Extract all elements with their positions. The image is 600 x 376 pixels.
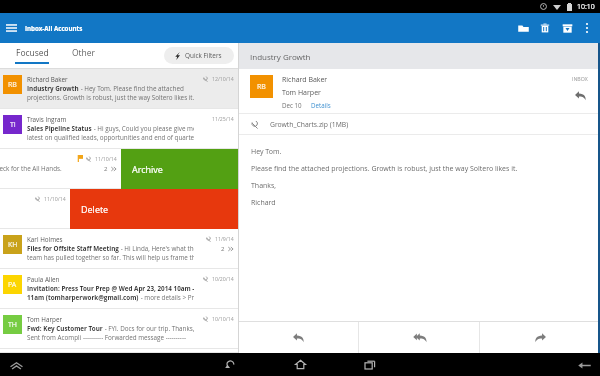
staticText: 11/9/14 (215, 235, 234, 242)
staticText: KH (8, 240, 18, 250)
button[interactable]: Other (72, 47, 96, 64)
staticText: 2 (104, 165, 108, 173)
staticText: RB (257, 82, 266, 92)
button[interactable]: LH (0, 149, 238, 189)
button[interactable]: Growth_Charts.zip (1MB) (239, 114, 600, 134)
staticText: Delete (81, 203, 109, 215)
button[interactable]: Navigation drawer (0, 13, 22, 43)
staticText: 10/10/14 (212, 315, 234, 322)
button[interactable]: Delete (534, 13, 556, 43)
staticText: 2 (221, 245, 225, 253)
button[interactable]: PA (0, 269, 238, 309)
button[interactable]: RB (0, 69, 238, 109)
button[interactable]: Collapse (6, 355, 26, 375)
button[interactable]: TI (0, 109, 238, 149)
staticText: Growth_Charts.zip (1MB) (270, 120, 349, 129)
staticText: Richard Baker (282, 75, 328, 85)
staticText: Industry Growth (27, 84, 79, 93)
staticText: Invitation: Press Tour Prep @ Wed Apr 23… (27, 284, 194, 293)
button[interactable]: More options (578, 13, 595, 43)
button[interactable]: Recent apps (350, 353, 390, 376)
button[interactable]: Delete (70, 189, 238, 229)
button[interactable]: Details (311, 101, 331, 109)
button[interactable]: Forward (480, 322, 600, 353)
button[interactable]: Archive (121, 149, 238, 189)
button[interactable]: TH (0, 309, 238, 349)
staticText: Hey Tom. (251, 147, 282, 157)
button[interactable]: Archive (556, 13, 578, 43)
staticText: INBOX (572, 75, 588, 82)
staticText: Sent from Acompli ---------- Forwarded m… (27, 333, 186, 342)
staticText: projections. Growth is robust, just the … (27, 93, 194, 102)
staticText: Quick Filters (185, 51, 222, 60)
staticText: Travis Ingram (27, 115, 67, 124)
staticText: Fwd: Key Customer Tour (27, 324, 103, 333)
staticText: Inbox-All Accounts (25, 24, 83, 32)
button[interactable]: KT (0, 349, 238, 353)
staticText: Tom Harper (282, 88, 321, 98)
staticText: - FYI. Docs for our trip. Thanks, Tom (103, 324, 194, 333)
staticText: Dec 10 (282, 101, 302, 109)
staticText: Karl Holmes (27, 235, 63, 244)
button[interactable]: JC (0, 189, 238, 229)
staticText: Richard Baker (27, 75, 68, 84)
staticText: 12/10/14 (212, 75, 234, 82)
staticText: Paula Allen (27, 275, 60, 284)
button[interactable]: Reply all (359, 322, 479, 353)
staticText: - Hey Tom. Please find the attached (79, 84, 184, 93)
staticText: 11am (tomharperwork@gmail.com) (27, 293, 139, 302)
staticText: - Here is the deck for the All Hands. (0, 164, 62, 173)
staticText: 10/20/14 (212, 275, 234, 282)
staticText: Industry Growth (250, 51, 311, 62)
staticText: latest on qualified leads, opportunities… (27, 133, 194, 142)
staticText: team has pulled together so far. This wi… (27, 253, 194, 262)
staticText: Richard (251, 198, 276, 208)
button[interactable]: Reply (573, 88, 588, 103)
staticText: - Hi Linda, Here's what the (119, 244, 194, 253)
button[interactable]: KH (0, 229, 238, 269)
button[interactable]: Focused (15, 47, 49, 64)
staticText: 11/25/14 (212, 115, 234, 122)
button[interactable]: Move to folder (512, 13, 534, 43)
staticText: RB (8, 80, 17, 90)
button[interactable]: Back (210, 353, 250, 376)
staticText: PA (8, 280, 17, 290)
staticText: Focused (16, 47, 49, 59)
button[interactable]: Hide keyboard (574, 355, 594, 375)
staticText: Please find the attached projections. Gr… (251, 164, 518, 174)
staticText: 11/10/14 (95, 155, 117, 162)
staticText: Tom Harper (27, 315, 63, 324)
staticText: Archive (132, 163, 163, 175)
staticText: 11/10/14 (44, 195, 66, 202)
staticText: 10:10 (577, 2, 595, 12)
staticText: - Hi guys, Could you please give me the (92, 124, 194, 133)
staticText: - more details > Press (139, 293, 194, 302)
staticText: TH (8, 320, 18, 330)
staticText: Sales Pipeline Status (27, 124, 92, 133)
staticText: TI (10, 120, 16, 130)
staticText: Thanks, (251, 181, 277, 191)
button[interactable]: Home (280, 353, 320, 376)
staticText: Files for Offsite Staff Meeting (27, 244, 119, 253)
button[interactable]: Quick Filters (164, 47, 234, 64)
staticText: Other (72, 47, 96, 59)
button[interactable]: Reply (239, 322, 358, 353)
